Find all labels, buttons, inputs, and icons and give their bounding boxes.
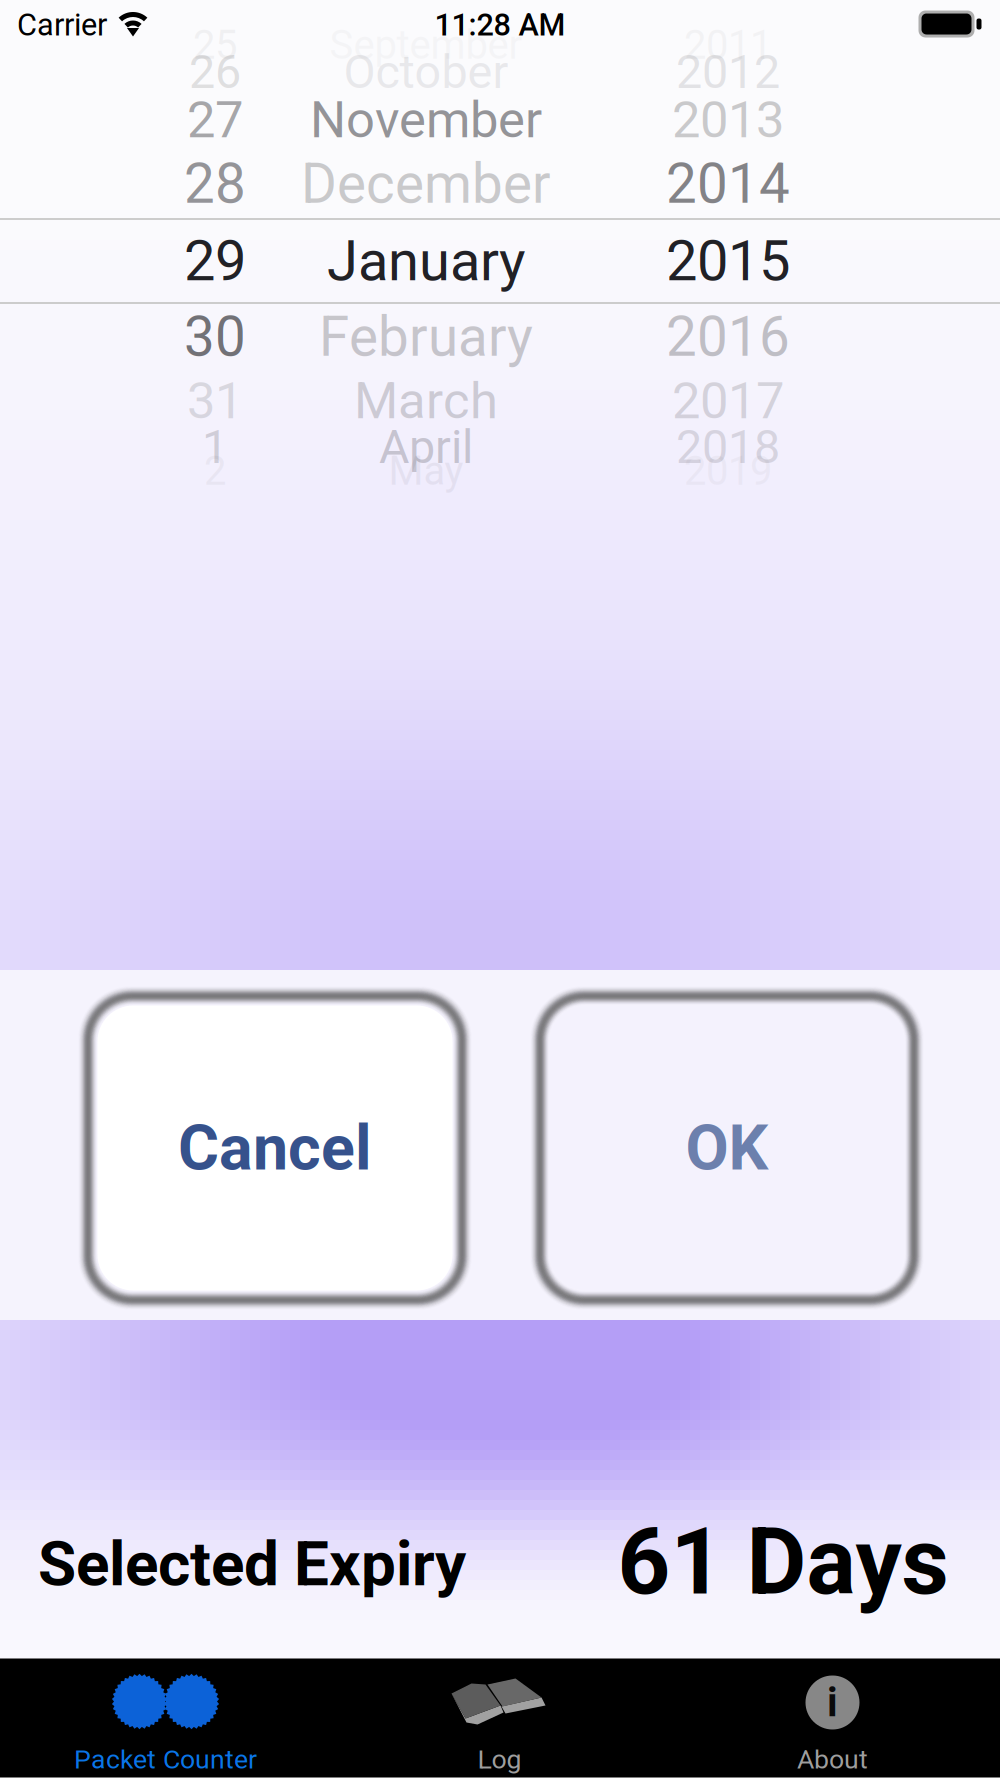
staticText: 2013 bbox=[672, 90, 784, 150]
staticText: Packet Counter bbox=[74, 1744, 257, 1775]
staticText: 2 bbox=[204, 448, 226, 494]
staticText: November bbox=[310, 90, 542, 150]
staticText: Cancel bbox=[178, 1111, 372, 1185]
staticText: Carrier bbox=[17, 7, 107, 43]
staticText: OK bbox=[685, 1111, 768, 1185]
staticText: 1 bbox=[202, 420, 228, 474]
button[interactable]: Packet Counter bbox=[0, 1658, 332, 1777]
staticText: May bbox=[388, 448, 463, 494]
staticText: About bbox=[797, 1744, 868, 1775]
staticText: 2017 bbox=[672, 371, 784, 431]
staticText: 28 bbox=[184, 152, 246, 216]
staticText: 30 bbox=[184, 305, 246, 369]
staticText: April bbox=[379, 420, 473, 474]
staticText: i bbox=[827, 1679, 838, 1726]
staticText: February bbox=[319, 305, 533, 369]
staticText: 27 bbox=[187, 90, 243, 150]
staticText: Log bbox=[477, 1744, 521, 1775]
staticText: 2011 bbox=[684, 22, 772, 68]
button[interactable]: OK bbox=[524, 980, 929, 1315]
staticText: 31 bbox=[187, 371, 243, 431]
staticText: 25 bbox=[193, 22, 237, 68]
staticText: Selected Expiry bbox=[38, 1528, 466, 1600]
staticText: 2014 bbox=[666, 152, 790, 216]
staticText: March bbox=[354, 371, 498, 431]
staticText: 29 bbox=[184, 228, 246, 294]
staticText: 11:28 AM bbox=[434, 7, 565, 43]
staticText: October bbox=[343, 45, 508, 99]
staticText: 2015 bbox=[666, 228, 790, 294]
button[interactable]: Log bbox=[333, 1658, 666, 1777]
staticText: January bbox=[327, 228, 525, 294]
staticText: 2016 bbox=[666, 305, 790, 369]
staticText: 2012 bbox=[676, 45, 780, 99]
staticText: September bbox=[329, 22, 522, 68]
staticText: December bbox=[301, 152, 551, 216]
button[interactable]: Cancel bbox=[72, 980, 477, 1315]
button[interactable]: i bbox=[666, 1658, 999, 1777]
staticText: 2019 bbox=[684, 448, 772, 494]
staticText: 61 Days bbox=[617, 1508, 948, 1616]
staticText: 2018 bbox=[676, 420, 780, 474]
staticText: 26 bbox=[189, 45, 241, 99]
